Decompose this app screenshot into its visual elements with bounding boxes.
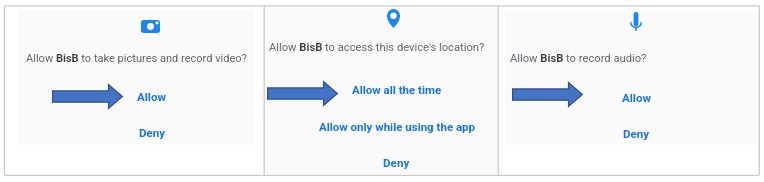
other: Microphone: [630, 12, 642, 31]
staticText: Deny: [623, 127, 650, 141]
button[interactable]: Allow all the time: [352, 83, 442, 96]
other: Location: [387, 9, 400, 28]
staticText: Allow BisB to access this device's locat…: [269, 41, 485, 54]
staticText: Allow BisB to take pictures and record v…: [26, 52, 247, 65]
staticText: Allow only while using the app: [319, 120, 476, 133]
button[interactable]: Deny: [623, 127, 650, 141]
staticText: Deny: [139, 126, 166, 140]
staticText: Allow: [137, 90, 166, 104]
staticText: Allow BisB to record audio?: [510, 52, 647, 65]
staticText: Deny: [383, 156, 410, 170]
staticText: Allow all the time: [352, 83, 442, 96]
button[interactable]: Deny: [383, 156, 410, 170]
button[interactable]: Allow: [137, 90, 166, 104]
button[interactable]: Deny: [139, 126, 166, 140]
staticText: Allow: [622, 91, 651, 105]
button[interactable]: Allow: [622, 91, 651, 105]
other: Camera: [141, 20, 160, 33]
button[interactable]: Allow only while using the app: [319, 120, 476, 133]
